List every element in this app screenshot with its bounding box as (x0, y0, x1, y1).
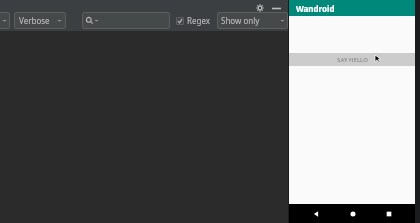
button[interactable]: Regex (176, 12, 210, 29)
button[interactable]: Settings (254, 2, 266, 14)
button[interactable]: Minimize (270, 2, 282, 14)
staticText: Wandroid (296, 3, 335, 14)
button[interactable]: Recent apps (379, 204, 398, 223)
button[interactable]: SAY HELLO (289, 53, 415, 66)
button[interactable]: Back (306, 204, 325, 223)
button[interactable]: Show only selected app (217, 12, 288, 29)
staticText: Regex (187, 15, 210, 26)
staticText: Verbose (19, 15, 50, 26)
button[interactable]: Device selector (0, 12, 10, 29)
button[interactable]: Home (343, 204, 362, 223)
staticText: SAY HELLO (337, 56, 368, 64)
staticText: Show only selected app (221, 15, 288, 26)
button[interactable]: Verbose (14, 12, 66, 29)
button[interactable]: Search logcat (82, 12, 170, 29)
